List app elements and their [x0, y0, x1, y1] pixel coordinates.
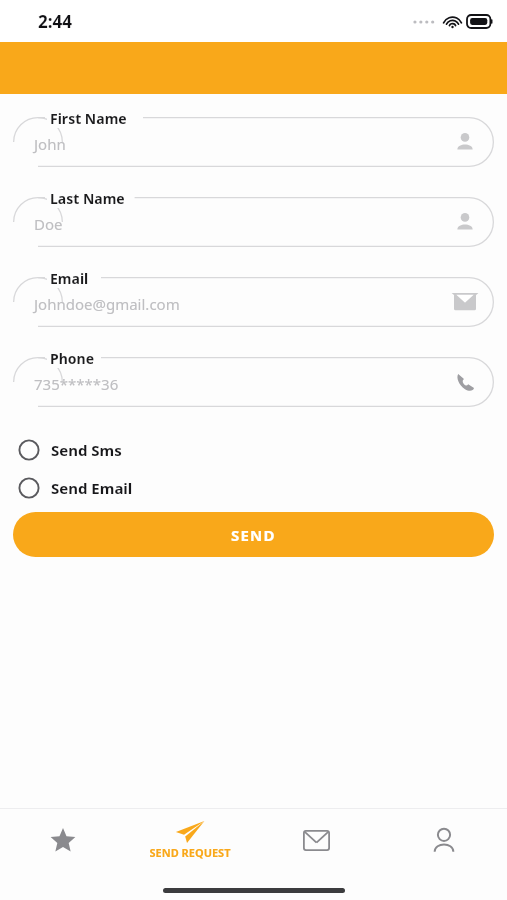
- staticText: Send Email: [51, 478, 133, 498]
- button[interactable]: Send Sms: [0, 435, 507, 465]
- button[interactable]: Profile: [380, 809, 507, 871]
- staticText: Email: [50, 269, 89, 288]
- button[interactable]: Send Email: [0, 473, 507, 503]
- staticText: SEND REQUEST: [149, 845, 231, 860]
- button[interactable]: [13, 357, 494, 407]
- staticText: Send Sms: [51, 440, 122, 460]
- staticText: Doe: [34, 214, 63, 234]
- staticText: 735*****36: [34, 374, 119, 394]
- staticText: SEND: [231, 525, 276, 545]
- button[interactable]: Favourites: [0, 809, 126, 871]
- staticText: Last Name: [50, 189, 125, 208]
- button[interactable]: Messages: [253, 809, 380, 871]
- staticText: Johndoe@gmail.com: [34, 294, 180, 314]
- staticText: 2:44: [38, 10, 72, 33]
- staticText: Phone: [50, 349, 95, 368]
- button[interactable]: [13, 197, 494, 247]
- staticText: First Name: [50, 109, 127, 128]
- button[interactable]: [13, 117, 494, 167]
- button[interactable]: SEND: [13, 512, 494, 557]
- button[interactable]: Send Request: [126, 809, 253, 871]
- staticText: John: [34, 134, 66, 154]
- button[interactable]: [13, 277, 494, 327]
